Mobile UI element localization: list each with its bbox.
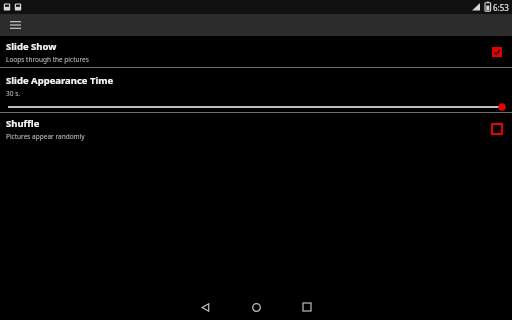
staticText: Slide Appearance Time xyxy=(6,74,114,87)
button[interactable]: Checked xyxy=(488,43,506,61)
staticText: Loops through the pictures xyxy=(6,55,89,64)
staticText: 30 s. xyxy=(6,89,20,98)
button[interactable]: Slide appearance time slider xyxy=(6,102,506,112)
staticText: Slide Show xyxy=(6,40,57,53)
button[interactable]: Unchecked xyxy=(488,120,506,138)
staticText: 6:53 xyxy=(493,2,509,13)
staticText: Shuffle xyxy=(6,117,40,130)
button[interactable]: Slide Show xyxy=(0,36,512,67)
button[interactable]: Home xyxy=(243,294,269,320)
button[interactable]: Back xyxy=(192,294,218,320)
button[interactable]: Recent apps xyxy=(294,294,320,320)
button[interactable]: Shuffle xyxy=(0,113,512,144)
button[interactable]: Open navigation menu xyxy=(7,17,23,33)
staticText: Pictures appear randomly xyxy=(6,132,85,141)
